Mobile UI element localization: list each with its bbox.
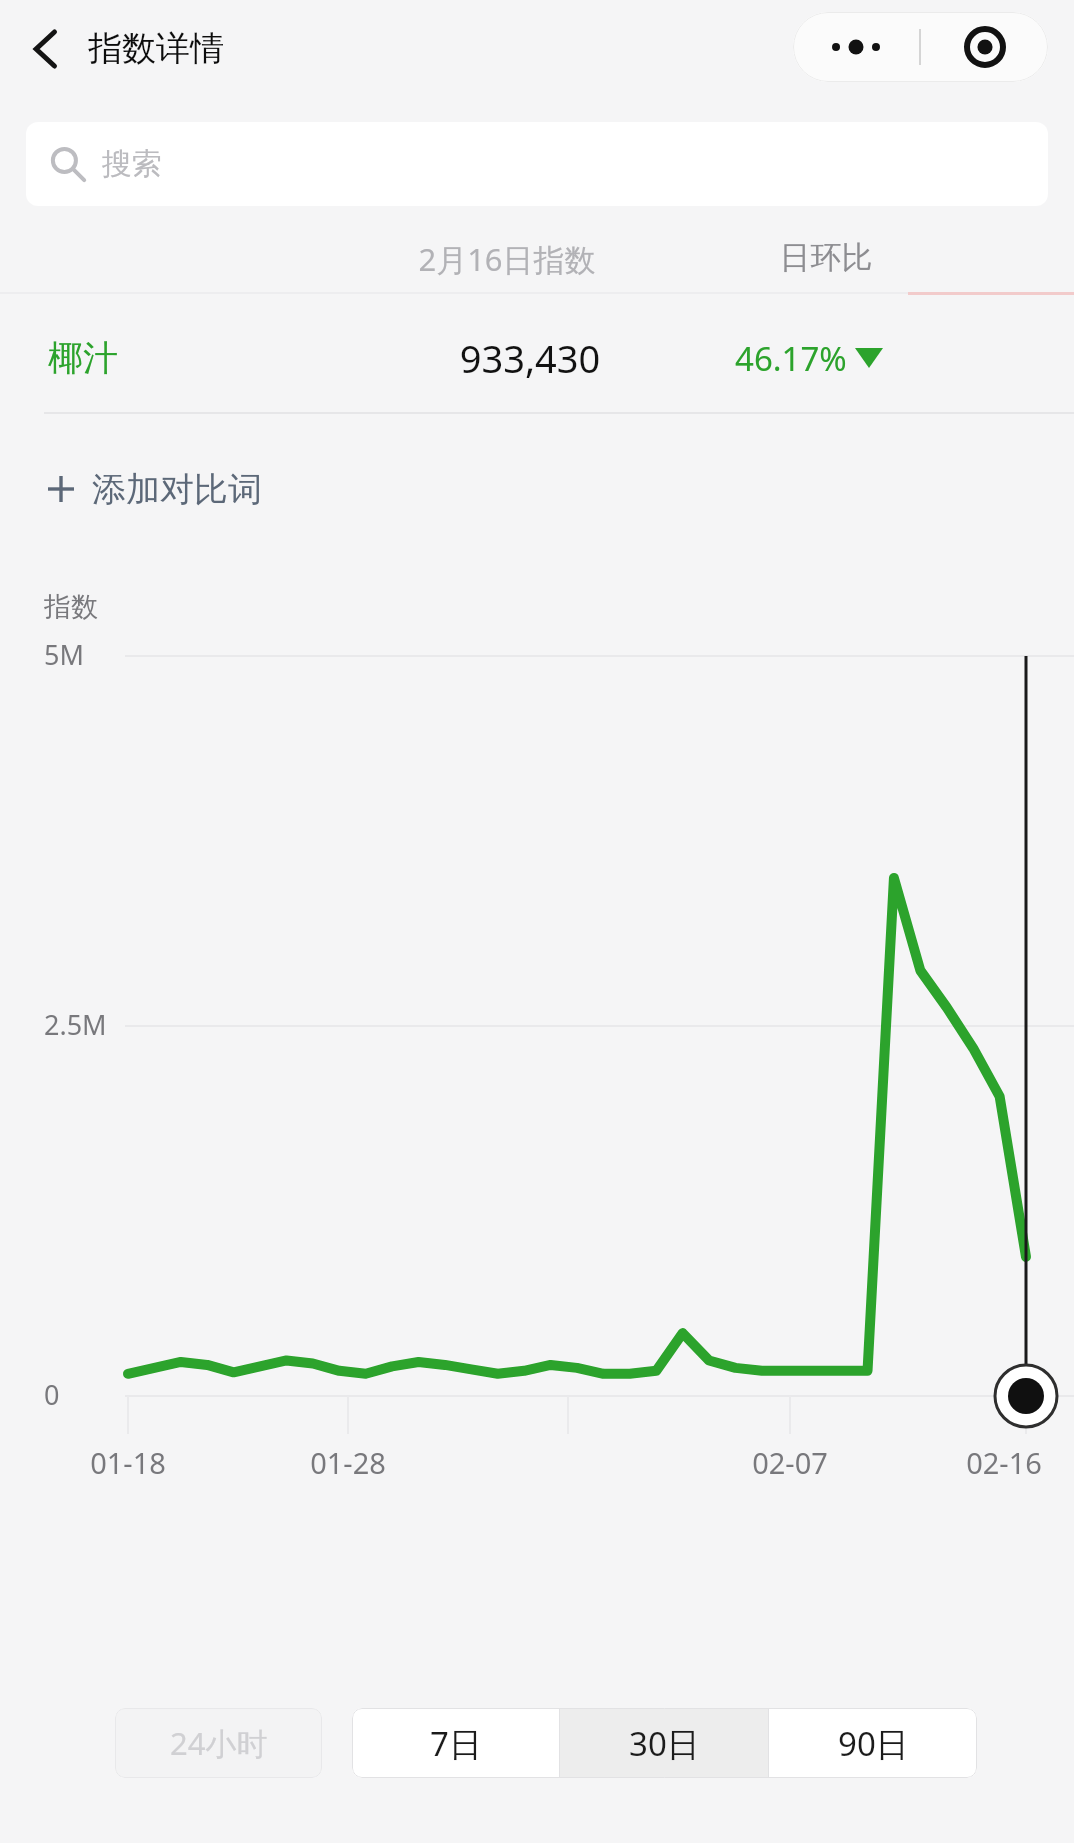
staticText: 02-16 bbox=[934, 1443, 1074, 1482]
button[interactable]: 添加对比词 bbox=[40, 455, 270, 523]
staticText: 添加对比词 bbox=[92, 468, 262, 511]
staticText: 指数 bbox=[44, 590, 98, 624]
staticText: 指数详情 bbox=[88, 27, 224, 70]
button[interactable]: 2月16日指数 bbox=[412, 238, 602, 280]
staticText: 01-28 bbox=[278, 1443, 418, 1482]
staticText: 02-07 bbox=[720, 1443, 860, 1482]
staticText: 5M bbox=[44, 636, 84, 673]
button[interactable]: 24小时 bbox=[115, 1708, 322, 1778]
button[interactable]: 日环比 bbox=[778, 238, 874, 277]
button[interactable]: Close mini program bbox=[921, 12, 1048, 82]
button[interactable]: 90日 bbox=[769, 1708, 977, 1778]
staticText: 933,430 bbox=[400, 332, 660, 384]
button[interactable]: 椰汁 bbox=[48, 336, 118, 380]
staticText: 30日 bbox=[629, 1721, 700, 1766]
button[interactable]: 7日 bbox=[352, 1708, 559, 1778]
staticText: 2.5M bbox=[44, 1006, 107, 1043]
staticText: 0 bbox=[44, 1376, 60, 1413]
staticText: 90日 bbox=[838, 1721, 909, 1766]
staticText: 搜索 bbox=[102, 145, 162, 183]
staticText: 7日 bbox=[430, 1721, 482, 1766]
button[interactable]: 搜索 bbox=[26, 122, 1048, 206]
staticText: 01-18 bbox=[58, 1443, 198, 1482]
staticText: 46.17% bbox=[735, 336, 847, 381]
button[interactable]: 30日 bbox=[560, 1708, 768, 1778]
staticText: 24小时 bbox=[170, 1722, 268, 1764]
button[interactable]: Back bbox=[14, 16, 80, 82]
button[interactable]: More options bbox=[793, 12, 919, 82]
